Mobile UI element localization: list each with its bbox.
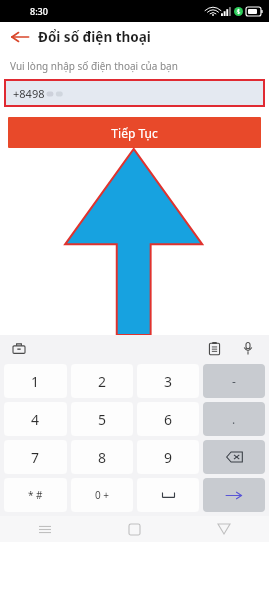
button[interactable]: Voice input — [239, 339, 257, 357]
staticText: Tiếp Tục — [111, 125, 158, 141]
staticText: 5 — [98, 410, 107, 429]
staticText: 3 — [164, 372, 173, 391]
button[interactable]: Space — [137, 478, 199, 512]
button[interactable]: Paste — [205, 339, 223, 357]
staticText: 8 — [98, 448, 107, 467]
staticText: 0 + — [95, 488, 110, 502]
staticText: 9 — [164, 448, 173, 467]
button[interactable]: . — [203, 402, 265, 436]
button[interactable]: 8 — [71, 440, 133, 474]
button[interactable]: 7 — [4, 440, 67, 474]
staticText: 7 — [31, 448, 40, 467]
button[interactable]: 3 — [137, 364, 199, 398]
button[interactable]: 2 — [71, 364, 133, 398]
button[interactable]: Clipboard tools — [10, 339, 28, 357]
button[interactable]: 5 — [71, 402, 133, 436]
button[interactable]: 9 — [137, 440, 199, 474]
button[interactable]: Back — [8, 25, 32, 49]
button[interactable]: Back — [179, 516, 269, 542]
button[interactable]: Enter — [203, 478, 265, 512]
staticText: 1 — [31, 372, 40, 391]
button[interactable]: 4 — [4, 402, 67, 436]
button[interactable]: * # — [4, 478, 67, 512]
staticText: Vui lòng nhập số điện thoại của bạn — [10, 59, 178, 73]
staticText: 8:30 — [30, 5, 48, 17]
staticText: 4 — [31, 410, 40, 429]
staticText: . — [232, 411, 236, 427]
staticText: Đổi số điện thoại — [38, 28, 151, 46]
button[interactable]: Backspace — [203, 440, 265, 474]
button[interactable]: 1 — [4, 364, 67, 398]
staticText: 6 — [164, 410, 173, 429]
button[interactable]: - — [203, 364, 265, 398]
button[interactable]: 0 + — [71, 478, 133, 512]
staticText: * # — [28, 488, 43, 502]
staticText: - — [232, 373, 236, 389]
staticText: 2 — [98, 372, 107, 391]
button[interactable]: Home — [89, 516, 179, 542]
staticText: +8498 — [13, 86, 45, 101]
button[interactable]: 6 — [137, 402, 199, 436]
button[interactable]: Tiếp Tục — [8, 117, 261, 148]
button[interactable]: +8498 — [6, 81, 263, 105]
button[interactable]: Recent apps — [0, 516, 89, 542]
